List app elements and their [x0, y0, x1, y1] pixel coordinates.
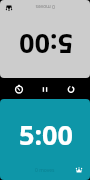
button[interactable]: Reset clock	[62, 80, 80, 98]
button[interactable]: 5:00	[0, 0, 90, 78]
staticText: 5:00	[19, 116, 73, 153]
staticText: 0 moves	[35, 3, 55, 10]
button[interactable]: 5:00	[0, 99, 90, 180]
staticText: 5:00	[19, 26, 73, 63]
staticText: 0 moves	[35, 167, 55, 174]
button[interactable]: Pause	[36, 80, 54, 98]
button[interactable]: Time control settings	[10, 80, 28, 98]
